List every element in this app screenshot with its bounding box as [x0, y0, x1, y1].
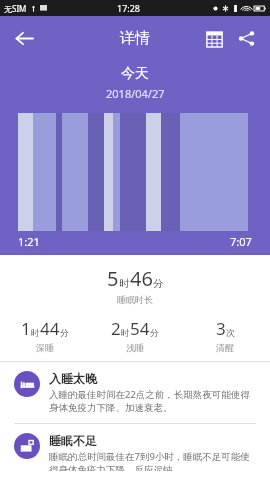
button[interactable]: Back [6, 20, 42, 56]
staticText: 3 [216, 317, 226, 340]
staticText: 深睡 [36, 342, 54, 353]
staticText: 2018/04/27 [106, 86, 165, 101]
button[interactable]: Calendar [198, 22, 230, 54]
staticText: 睡眠不足 [49, 433, 97, 448]
staticText: 2 [111, 317, 121, 340]
staticText: 46 [130, 265, 153, 292]
staticText: 1 [21, 317, 31, 340]
staticText: 1:21 [18, 234, 40, 249]
staticText: 清醒 [216, 342, 234, 353]
staticText: 浅睡 [126, 342, 144, 353]
staticText: 时 [31, 327, 40, 338]
staticText: 睡眠的总时间最佳在7到9小时，睡眠不足可能使得身体免疫力下降、反应迟钝。 [49, 450, 256, 471]
staticText: 7:07 [230, 234, 252, 249]
staticText: 分 [153, 277, 164, 290]
staticText: 分 [60, 327, 69, 338]
staticText: 17:28 [117, 2, 141, 14]
button[interactable]: 2 [90, 317, 180, 353]
staticText: 时 [121, 327, 130, 338]
staticText: 44 [40, 317, 60, 340]
staticText: 5 [107, 265, 119, 292]
staticText: 54 [130, 317, 150, 340]
staticText: 入睡太晚 [49, 371, 97, 386]
button[interactable]: Share [230, 22, 262, 54]
staticText: 睡眠时长 [117, 294, 153, 305]
staticText: 时 [119, 277, 130, 290]
staticText: 次 [226, 327, 235, 338]
button[interactable]: 睡眠不足 [0, 424, 270, 480]
button[interactable]: 入睡太晚 [0, 362, 270, 423]
button[interactable]: 1 [0, 317, 90, 353]
staticText: 今天 [121, 65, 149, 83]
button[interactable]: 3 [180, 317, 270, 353]
staticText: 入睡的最佳时间在22点之前，长期熬夜可能使得身体免疫力下降、加速衰老。 [49, 388, 256, 414]
staticText: 分 [150, 327, 159, 338]
staticText: 详情 [120, 29, 150, 48]
staticText: 无SIM [4, 3, 27, 14]
